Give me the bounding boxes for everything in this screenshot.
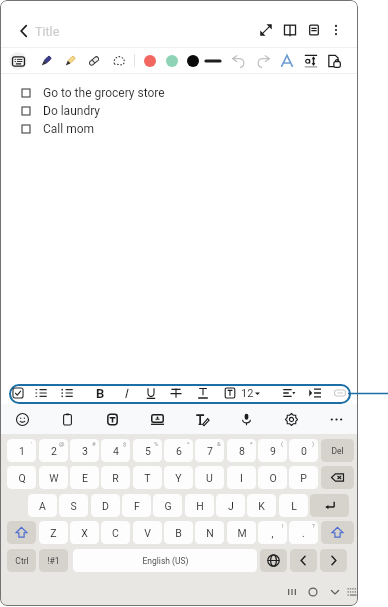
button[interactable]: Translate — [99, 406, 125, 432]
button[interactable]: H — [185, 494, 214, 517]
button[interactable]: Key — [321, 466, 354, 489]
staticText: @ — [59, 440, 65, 447]
button[interactable]: 5 — [133, 439, 162, 462]
button[interactable]: Highlighter — [59, 50, 81, 72]
button[interactable]: B — [164, 521, 193, 544]
button[interactable]: Screenshot — [144, 406, 170, 432]
button[interactable]: Colour — [184, 52, 202, 70]
button[interactable]: . — [289, 521, 318, 544]
button[interactable]: F — [122, 494, 151, 517]
button[interactable]: Reading mode — [279, 19, 301, 41]
button[interactable]: Voice input — [233, 406, 259, 432]
button[interactable]: Call mom — [22, 120, 95, 138]
button[interactable]: B — [90, 383, 110, 403]
button[interactable]: 2 — [39, 439, 68, 462]
button[interactable]: Go to the grocery store — [22, 84, 165, 102]
button[interactable]: 1 — [7, 439, 36, 462]
button[interactable]: A — [28, 494, 57, 517]
button[interactable]: Key — [321, 521, 354, 544]
button[interactable]: Ctrl — [7, 549, 36, 572]
button[interactable]: J — [216, 494, 245, 517]
button[interactable]: Convert to text — [300, 50, 322, 72]
button[interactable]: Eraser — [83, 50, 105, 72]
button[interactable]: R — [101, 466, 130, 489]
button[interactable]: Key — [7, 521, 36, 544]
button[interactable]: !#1 — [39, 549, 68, 572]
button[interactable]: N — [195, 521, 224, 544]
button[interactable]: Checklist — [8, 383, 28, 403]
button[interactable]: Key — [260, 549, 287, 572]
button[interactable]: English (US) — [73, 549, 257, 572]
button[interactable]: Del — [321, 439, 354, 462]
button[interactable]: Redo — [252, 50, 274, 72]
button[interactable]: Do laundry — [22, 102, 100, 120]
button[interactable]: 4 — [101, 439, 130, 462]
button[interactable]: E — [70, 466, 99, 489]
button[interactable]: L — [279, 494, 308, 517]
button[interactable]: Q — [7, 466, 36, 489]
button[interactable]: Keyboard settings — [278, 406, 304, 432]
button[interactable]: I — [116, 383, 136, 403]
button[interactable]: Y — [164, 466, 193, 489]
button[interactable]: Z — [39, 521, 68, 544]
button[interactable]: Hide keyboard — [324, 581, 346, 603]
button[interactable]: S — [59, 494, 88, 517]
button[interactable]: V — [133, 521, 162, 544]
button[interactable]: I — [227, 466, 256, 489]
button[interactable]: Colour — [141, 52, 159, 70]
button[interactable]: 7 — [195, 439, 224, 462]
button[interactable]: Text colour — [193, 383, 213, 403]
button[interactable]: Lock note — [324, 50, 346, 72]
button[interactable]: 12 — [241, 386, 260, 400]
button[interactable]: Full screen — [255, 19, 277, 41]
staticText: N — [206, 527, 214, 539]
button[interactable]: Page view — [303, 19, 325, 41]
button[interactable]: Strikethrough — [166, 383, 186, 403]
button[interactable]: Undo — [228, 50, 250, 72]
button[interactable]: Keyboard — [342, 581, 358, 603]
button[interactable]: Indent — [305, 383, 325, 403]
button[interactable]: Text mode — [9, 52, 27, 70]
button[interactable]: U — [195, 466, 224, 489]
button[interactable]: , — [258, 521, 287, 544]
button[interactable]: G — [153, 494, 182, 517]
button[interactable]: Bulleted list — [57, 383, 77, 403]
button[interactable]: Alignment — [279, 383, 299, 403]
button[interactable]: Numbered list — [31, 383, 51, 403]
button[interactable]: Colour — [163, 52, 181, 70]
button[interactable]: Navigate up — [8, 15, 40, 47]
button[interactable]: M — [227, 521, 256, 544]
button[interactable]: More — [330, 383, 350, 403]
button[interactable]: Highlight colour — [220, 383, 240, 403]
staticText: Call mom — [43, 122, 95, 136]
button[interactable]: C — [101, 521, 130, 544]
button[interactable]: Home — [302, 581, 324, 603]
button[interactable]: X — [70, 521, 99, 544]
button[interactable]: O — [258, 466, 287, 489]
button[interactable]: Pen — [35, 50, 57, 72]
button[interactable]: 9 — [258, 439, 287, 462]
button[interactable]: Stroke width — [202, 50, 224, 72]
button[interactable]: 3 — [70, 439, 99, 462]
button[interactable]: Underline — [141, 383, 161, 403]
button[interactable]: P — [289, 466, 318, 489]
button[interactable]: Emoji — [9, 406, 35, 432]
button[interactable]: Key — [320, 549, 347, 572]
button[interactable]: 0 — [289, 439, 318, 462]
button[interactable]: More options — [325, 19, 347, 41]
button[interactable]: Recent apps — [281, 581, 303, 603]
button[interactable]: T — [133, 466, 162, 489]
button[interactable]: 6 — [164, 439, 193, 462]
staticText: J — [228, 500, 234, 512]
button[interactable]: More options — [323, 406, 349, 432]
button[interactable]: Key — [290, 549, 317, 572]
button[interactable]: W — [39, 466, 68, 489]
button[interactable]: D — [91, 494, 120, 517]
button[interactable]: Handwriting — [189, 406, 215, 432]
button[interactable]: Selection — [108, 50, 130, 72]
button[interactable]: 8 — [227, 439, 256, 462]
button[interactable]: Key — [310, 494, 349, 517]
button[interactable]: Clipboard — [54, 406, 80, 432]
button[interactable]: K — [247, 494, 276, 517]
button[interactable]: Shape recognition — [276, 50, 298, 72]
